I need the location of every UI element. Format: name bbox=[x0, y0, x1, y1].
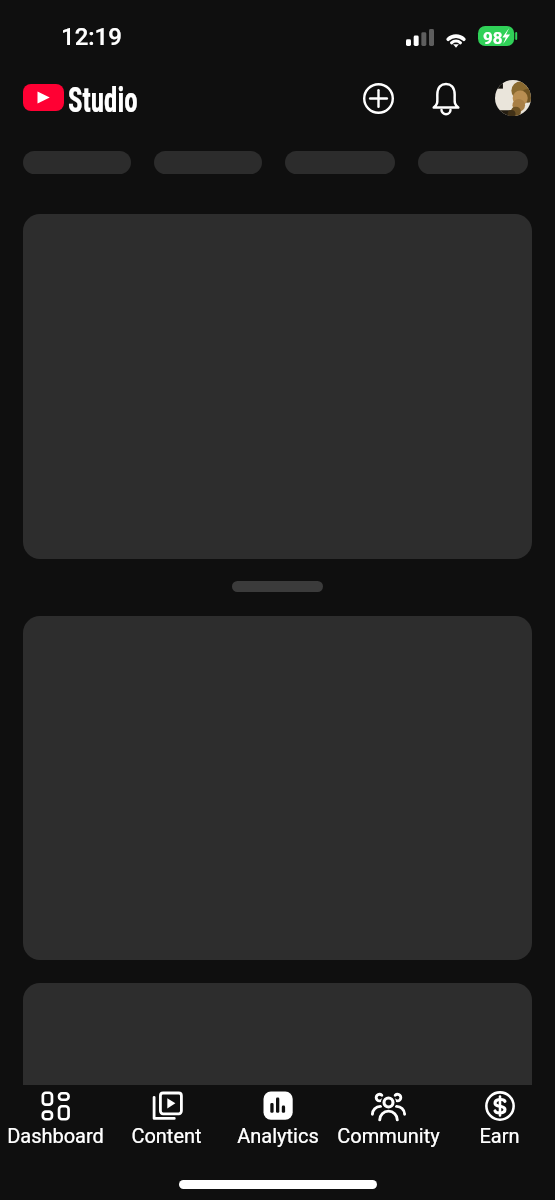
button[interactable] bbox=[418, 151, 528, 174]
button[interactable]: Analytics bbox=[222, 1085, 333, 1147]
button[interactable]: Account bbox=[495, 80, 531, 116]
staticText: Content bbox=[131, 1124, 202, 1147]
button[interactable]: Content bbox=[111, 1085, 222, 1147]
staticText: 98 bbox=[483, 28, 503, 48]
button[interactable]: Dashboard bbox=[0, 1085, 111, 1147]
button[interactable]: Earn bbox=[444, 1085, 555, 1147]
button[interactable]: YouTube Studio bbox=[23, 84, 64, 111]
button[interactable]: Reorder bbox=[232, 581, 323, 592]
button[interactable] bbox=[154, 151, 262, 174]
staticText: 12:19 bbox=[61, 23, 122, 51]
button[interactable]: Community bbox=[333, 1085, 444, 1147]
button[interactable]: Notifications bbox=[422, 74, 470, 122]
button[interactable]: Create bbox=[354, 74, 402, 122]
staticText: Studio bbox=[68, 80, 138, 121]
button[interactable] bbox=[285, 151, 395, 174]
staticText: Earn bbox=[479, 1124, 520, 1147]
staticText: Community bbox=[337, 1124, 440, 1147]
staticText: Dashboard bbox=[7, 1124, 104, 1147]
button[interactable] bbox=[23, 151, 131, 174]
staticText: Analytics bbox=[237, 1124, 319, 1147]
